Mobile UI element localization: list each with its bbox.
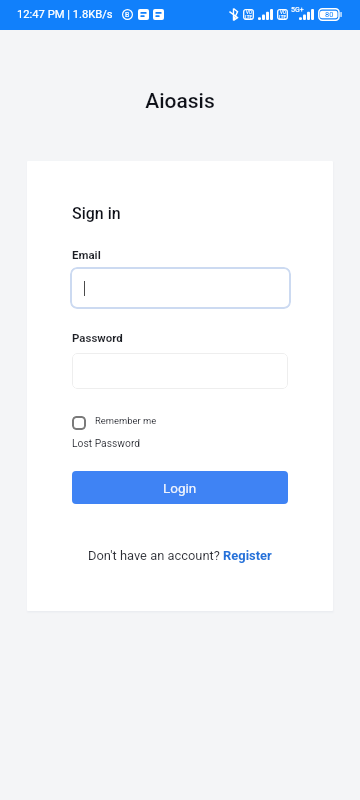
staticText: LTE	[279, 15, 287, 20]
staticText: 12:47 PM | 1.8KB/s	[17, 8, 113, 21]
staticText: LTE	[245, 15, 253, 20]
staticText: 5G+	[291, 6, 304, 14]
staticText: Login	[163, 480, 197, 496]
staticText: Email	[72, 248, 101, 261]
button[interactable]: Password input field	[72, 353, 288, 389]
staticText: Sign in	[72, 204, 121, 223]
button[interactable]: Don't have an account? Register	[88, 548, 272, 563]
button[interactable]: Email input field	[70, 267, 291, 309]
staticText: B	[125, 11, 130, 19]
button[interactable]: Lost Password	[72, 437, 141, 449]
staticText: VO	[280, 10, 286, 15]
staticText: Remember me	[95, 415, 157, 426]
button[interactable]: Login	[72, 471, 288, 504]
staticText: Password	[72, 331, 123, 344]
staticText: VO	[246, 10, 252, 15]
button[interactable]: Remember me	[72, 413, 157, 427]
staticText: 80	[325, 10, 334, 19]
staticText: Aioasis	[0, 89, 360, 114]
